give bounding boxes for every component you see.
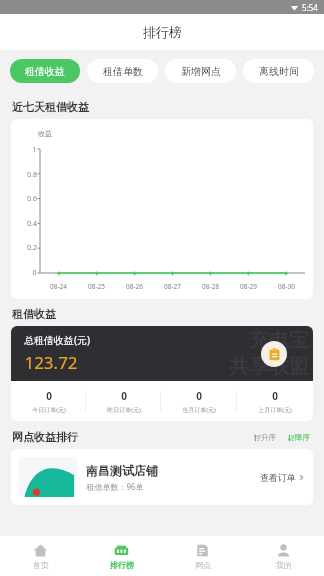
staticText: 离线时间 [259, 65, 299, 78]
staticText: 08-30 [278, 282, 295, 291]
button[interactable]: 我的 [243, 536, 324, 576]
staticText: 充电宝 [249, 328, 309, 353]
staticText: 08-26 [126, 282, 143, 291]
button[interactable]: 新增网点 [165, 59, 236, 83]
staticText: 08-28 [202, 282, 219, 291]
staticText: 08-24 [50, 282, 67, 291]
button[interactable]: 升序 [251, 433, 278, 442]
button[interactable]: 南昌测试店铺 [11, 449, 313, 505]
button[interactable]: 0 [161, 381, 237, 421]
staticText: 租借单数 [103, 65, 143, 78]
button[interactable]: 收益明细 [261, 341, 287, 367]
staticText: 排行榜 [110, 560, 134, 570]
button[interactable]: 网点 [162, 536, 243, 576]
staticText: 123.72 [24, 351, 78, 374]
staticText: 上月订单(元) [258, 406, 292, 414]
staticText: 查看订单 [260, 472, 296, 483]
staticText: 5:54 [302, 2, 318, 13]
button[interactable]: 降序 [285, 433, 312, 442]
staticText: 08-29 [240, 282, 257, 291]
staticText: 0 [121, 389, 127, 403]
staticText: 0 [32, 268, 37, 278]
button[interactable]: 0 [237, 381, 313, 421]
staticText: 租借单数：96单 [86, 481, 144, 492]
staticText: 总租借收益(元) [24, 333, 90, 347]
staticText: 今日订单(元) [32, 406, 66, 414]
staticText: 0.8 [27, 170, 37, 180]
staticText: 租借收益 [12, 307, 56, 321]
staticText: 升序 [261, 433, 276, 442]
staticText: 新增网点 [181, 65, 221, 78]
button[interactable]: 首页 [0, 536, 81, 576]
staticText: 0.2 [27, 243, 37, 253]
staticText: 0 [272, 389, 278, 403]
button[interactable]: 租借收益 [10, 59, 80, 83]
staticText: 08-27 [164, 282, 181, 291]
staticText: 当月订单(元) [182, 406, 216, 414]
staticText: 0 [196, 389, 202, 403]
staticText: 首页 [33, 560, 49, 570]
button[interactable]: 0 [11, 381, 86, 421]
button[interactable]: 租借单数 [87, 59, 158, 83]
staticText: 降序 [295, 433, 310, 442]
staticText: 共享联盟 [229, 354, 309, 379]
staticText: 昨日订单(元) [107, 406, 141, 414]
staticText: 排行榜 [143, 24, 182, 40]
staticText: 南昌测试店铺 [86, 463, 158, 478]
staticText: 0 [46, 389, 52, 403]
button[interactable]: 0 [86, 381, 161, 421]
staticText: 1 [32, 145, 37, 155]
button[interactable]: 离线时间 [243, 59, 314, 83]
staticText: 网点收益排行 [12, 430, 78, 444]
button[interactable]: 排行榜 [81, 536, 162, 576]
staticText: 0.6 [27, 194, 37, 204]
staticText: 租借收益 [25, 65, 65, 78]
staticText: 我的 [276, 560, 292, 570]
staticText: 收益 [38, 129, 52, 138]
staticText: 近七天租借收益 [12, 100, 89, 114]
staticText: 08-25 [88, 282, 105, 291]
staticText: 0.4 [27, 219, 37, 229]
staticText: 网点 [195, 560, 211, 570]
